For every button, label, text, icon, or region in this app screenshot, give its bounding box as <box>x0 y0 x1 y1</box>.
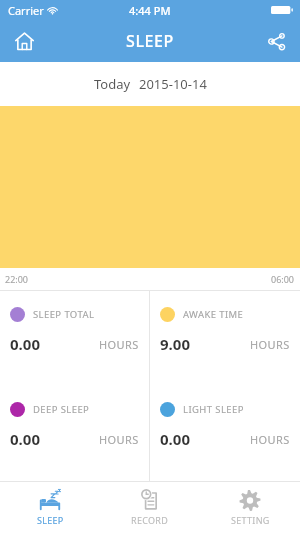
button[interactable]: SLEEP TOTAL <box>0 291 149 386</box>
staticText: SLEEP TOTAL <box>33 308 95 321</box>
staticText: 0.00 <box>10 429 40 449</box>
staticText: HOURS <box>250 337 290 352</box>
staticText: 0.00 <box>160 429 190 449</box>
staticText: HOURS <box>250 432 290 447</box>
staticText: LIGHT SLEEP <box>183 403 244 416</box>
staticText: HOURS <box>99 337 139 352</box>
staticText: SLEEP <box>126 30 174 52</box>
staticText: HOURS <box>99 432 139 447</box>
staticText: SETTING <box>231 514 270 526</box>
staticText: 22:00 <box>5 273 29 285</box>
button[interactable]: Home <box>6 23 42 59</box>
button[interactable]: SETTING <box>200 482 300 533</box>
button[interactable]: DEEP SLEEP <box>0 386 149 481</box>
staticText: 2015-10-14 <box>139 75 207 93</box>
button[interactable]: RECORD <box>100 482 200 533</box>
button[interactable]: AWAKE TIME <box>150 291 300 386</box>
staticText: Carrier <box>8 3 44 18</box>
button[interactable]: Share <box>258 23 294 59</box>
button[interactable]: LIGHT SLEEP <box>150 386 300 481</box>
staticText: 0.00 <box>10 334 40 354</box>
staticText: SLEEP <box>37 514 64 526</box>
staticText: DEEP SLEEP <box>33 403 90 416</box>
staticText: 4:44 PM <box>129 3 171 18</box>
staticText: RECORD <box>131 514 169 526</box>
staticText: Today <box>94 75 131 93</box>
staticText: 9.00 <box>160 334 190 354</box>
button[interactable]: SLEEP <box>0 482 100 533</box>
staticText: AWAKE TIME <box>183 308 244 321</box>
button[interactable]: Today <box>0 62 300 106</box>
staticText: 06:00 <box>271 273 295 285</box>
